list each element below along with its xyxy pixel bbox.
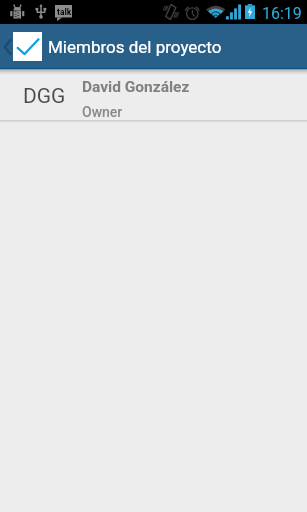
button[interactable]: Navigate up — [0, 24, 307, 69]
staticText: talk — [57, 6, 72, 17]
staticText: Owner — [82, 104, 123, 120]
staticText: DGG — [23, 84, 66, 109]
staticText: David González — [82, 78, 190, 96]
staticText: Miembros del proyecto — [48, 37, 222, 57]
staticText: 16:19 — [262, 4, 302, 23]
button[interactable]: DGG — [0, 69, 307, 120]
